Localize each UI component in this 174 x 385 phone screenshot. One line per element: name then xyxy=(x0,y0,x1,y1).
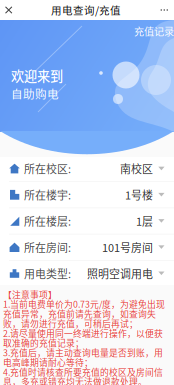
staticText: 1号楼 xyxy=(125,187,153,203)
button[interactable]: 充值记录 xyxy=(126,24,174,38)
staticText: 照明空调用电 xyxy=(87,265,153,281)
staticText: 【注意事项】 xyxy=(3,289,57,299)
staticText: 充值记录 xyxy=(134,24,174,38)
staticText: 所在楼层: xyxy=(24,213,71,229)
staticText: 2.请尽量使用同一终端进行操作，以便获取准确的充值记录； xyxy=(3,328,163,348)
staticText: 用电查询/充值 xyxy=(51,2,121,18)
staticText: 101号房间 xyxy=(102,239,153,255)
staticText: 所在楼宇: xyxy=(24,187,71,203)
staticText: 1层 xyxy=(136,213,153,229)
staticText: 所在校区: xyxy=(24,161,71,176)
button[interactable]: 所在校区: xyxy=(0,156,174,181)
staticText: 欢迎来到 xyxy=(11,66,63,85)
staticText: 1.当前电费单价为0.73元/度，为避免出现充值异常，充值前请先查询，如查询失败… xyxy=(3,299,165,328)
button[interactable]: 所在楼层: xyxy=(0,208,174,234)
staticText: 自助购电 xyxy=(11,85,59,102)
button[interactable]: 用电类型: xyxy=(0,261,174,286)
staticText: 南校区 xyxy=(120,161,153,176)
button[interactable]: 所在楼宇: xyxy=(0,182,174,208)
staticText: 所在房间: xyxy=(24,239,71,255)
button[interactable]: Close xyxy=(0,0,17,20)
staticText: 用电类型: xyxy=(24,265,71,281)
staticText: 3.充值后，请主动查询电量是否到账，用电高峰期请耐心等待； xyxy=(3,348,163,367)
staticText: 4.充值时请核查所要充值的校区及房间信息，多充或错充均无法做退款处理。 xyxy=(3,367,163,385)
button[interactable]: 所在房间: xyxy=(0,234,174,260)
button[interactable]: More xyxy=(154,0,174,20)
